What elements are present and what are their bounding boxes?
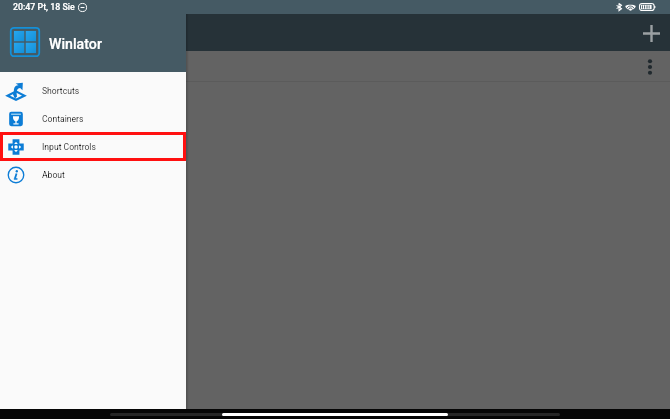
button[interactable]: Shortcuts <box>0 77 186 105</box>
button[interactable]: About <box>0 161 186 189</box>
button[interactable]: Input Controls <box>0 133 186 161</box>
staticText: Winlator <box>49 36 102 53</box>
staticText: Containers <box>42 114 84 124</box>
staticText: Input Controls <box>42 142 96 152</box>
staticText: About <box>42 170 65 180</box>
button[interactable]: Containers <box>0 105 186 133</box>
staticText: 20:47 Pt, 18 Sie <box>13 2 75 12</box>
staticText: Shortcuts <box>42 86 80 96</box>
button[interactable]: More options <box>637 54 663 80</box>
button[interactable]: Add <box>635 17 667 49</box>
